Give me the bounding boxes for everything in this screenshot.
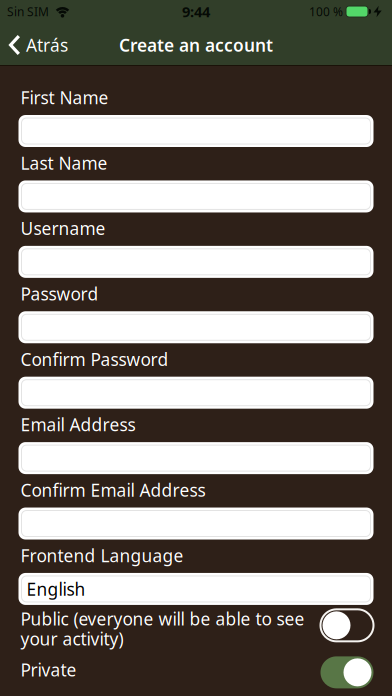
- staticText: 100 %: [309, 3, 343, 19]
- button[interactable]: Private: [320, 656, 373, 688]
- staticText: Username: [20, 217, 105, 240]
- button[interactable]: Back: [9, 33, 68, 56]
- staticText: Sin SIM: [7, 3, 49, 19]
- button[interactable]: First Name: [18, 115, 373, 147]
- staticText: Atrás: [26, 33, 68, 56]
- staticText: Confirm Password: [20, 348, 168, 371]
- staticText: Public (everyone will be able to see you…: [20, 607, 304, 650]
- button[interactable]: Email Address: [18, 442, 373, 474]
- staticText: Confirm Email Address: [20, 478, 205, 501]
- staticText: Private: [20, 658, 76, 681]
- staticText: Frontend Language: [20, 544, 183, 567]
- staticText: Email Address: [20, 413, 135, 436]
- staticText: Password: [20, 282, 98, 305]
- button[interactable]: Frontend Language: [18, 573, 373, 605]
- button[interactable]: Public: [320, 609, 373, 641]
- staticText: Create an account: [119, 33, 273, 56]
- button[interactable]: Confirm Email Address: [18, 507, 373, 539]
- button[interactable]: Password: [18, 311, 373, 343]
- button[interactable]: Last Name: [18, 180, 373, 212]
- button[interactable]: Username: [18, 246, 373, 278]
- staticText: First Name: [20, 86, 108, 109]
- button[interactable]: Confirm Password: [18, 377, 373, 409]
- staticText: 9:44: [182, 2, 210, 21]
- staticText: Last Name: [20, 151, 107, 174]
- staticText: English: [26, 577, 85, 600]
